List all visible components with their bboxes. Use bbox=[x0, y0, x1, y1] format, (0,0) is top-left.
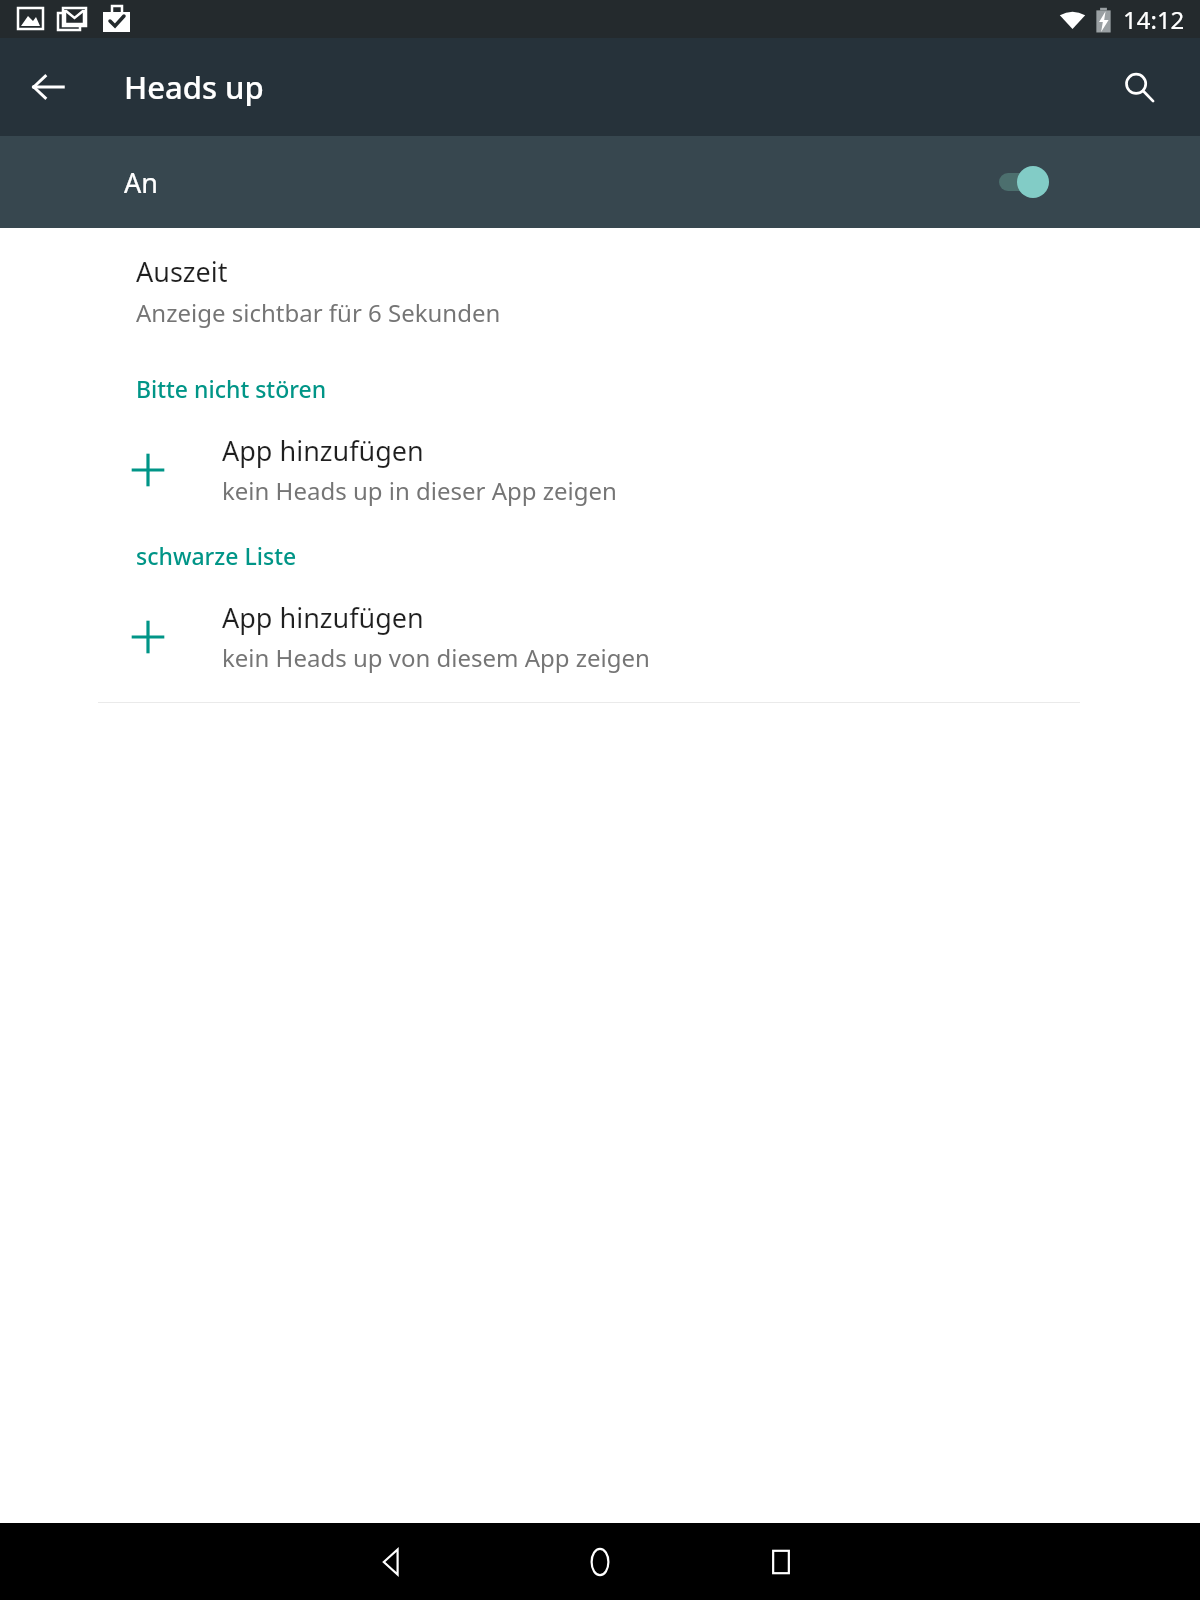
staticText: An bbox=[124, 164, 158, 201]
button[interactable]: Home bbox=[564, 1526, 636, 1598]
staticText: App hinzufügen bbox=[222, 432, 424, 469]
button[interactable]: Back bbox=[355, 1526, 427, 1598]
staticText: Anzeige sichtbar für 6 Sekunden bbox=[136, 296, 501, 329]
staticText: Auszeit bbox=[136, 253, 228, 290]
button[interactable]: Back bbox=[14, 53, 82, 121]
button[interactable]: Auszeit bbox=[0, 245, 1200, 337]
staticText: App hinzufügen bbox=[222, 599, 424, 636]
staticText: kein Heads up in dieser App zeigen bbox=[222, 474, 617, 507]
staticText: schwarze Liste bbox=[136, 540, 297, 571]
staticText: Heads up bbox=[124, 66, 264, 108]
button[interactable]: An bbox=[0, 136, 1200, 228]
button[interactable]: Search bbox=[1106, 54, 1172, 120]
staticText: kein Heads up von diesem App zeigen bbox=[222, 641, 650, 674]
staticText: Bitte nicht stören bbox=[136, 373, 327, 404]
button[interactable]: Recent apps bbox=[745, 1526, 817, 1598]
staticText: 14:12 bbox=[1123, 3, 1185, 36]
button[interactable]: App hinzufügen bbox=[0, 593, 1200, 680]
button[interactable]: App hinzufügen bbox=[0, 426, 1200, 513]
